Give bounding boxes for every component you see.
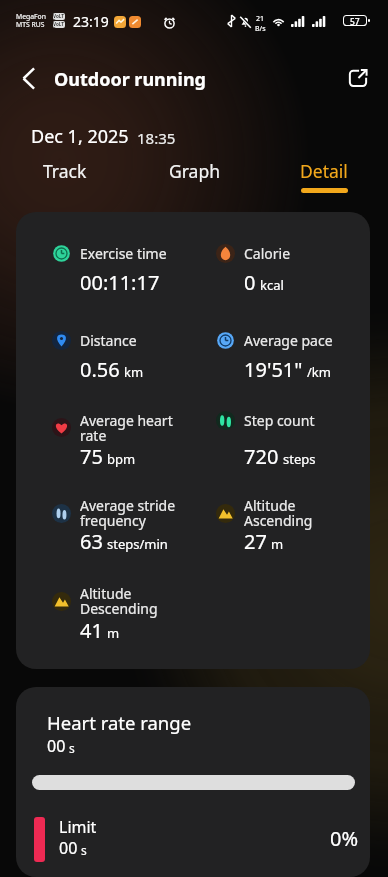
- staticText: Outdoor running: [54, 67, 206, 92]
- staticText: Altitude Descending: [80, 584, 198, 618]
- staticText: Track: [43, 159, 87, 183]
- staticText: 21: [256, 14, 265, 24]
- staticText: Heart rate range: [47, 710, 192, 735]
- staticText: 41: [80, 617, 103, 644]
- staticText: m: [271, 535, 284, 553]
- button[interactable]: Share: [336, 56, 380, 100]
- staticText: Distance: [80, 331, 198, 350]
- staticText: Average pace: [244, 331, 362, 350]
- staticText: MegaFon: [16, 12, 46, 21]
- staticText: MTS RUS: [16, 20, 45, 29]
- staticText: VoLTE: [53, 13, 65, 20]
- staticText: Graph: [169, 159, 221, 183]
- staticText: VoLTE: [53, 21, 65, 28]
- staticText: s: [69, 740, 75, 756]
- staticText: B/s: [255, 24, 266, 34]
- staticText: Average heart rate: [80, 411, 198, 445]
- staticText: 00: [47, 735, 66, 757]
- staticText: 00: [59, 837, 78, 859]
- button[interactable]: Back: [7, 56, 51, 100]
- staticText: km: [124, 363, 144, 381]
- staticText: 18:35: [137, 128, 176, 148]
- staticText: 19'51": [244, 356, 303, 383]
- staticText: 27: [244, 528, 267, 555]
- button[interactable]: Detail: [259, 159, 388, 199]
- staticText: 75: [80, 443, 103, 470]
- staticText: Limit: [59, 816, 97, 838]
- staticText: 720: [244, 443, 279, 470]
- staticText: steps: [283, 450, 316, 468]
- staticText: Exercise time: [80, 244, 198, 263]
- staticText: steps/min: [107, 535, 168, 553]
- staticText: 00:11:17: [80, 269, 160, 296]
- staticText: Calorie: [244, 244, 362, 263]
- staticText: Altitude Ascending: [244, 496, 362, 530]
- button[interactable]: Graph: [130, 159, 259, 199]
- staticText: 0%: [330, 825, 359, 852]
- staticText: 57: [350, 16, 360, 25]
- staticText: 0: [244, 269, 256, 296]
- staticText: kcal: [260, 276, 284, 294]
- staticText: 63: [80, 528, 103, 555]
- staticText: Average stride frequency: [80, 496, 198, 530]
- staticText: Detail: [300, 159, 348, 183]
- staticText: /km: [307, 363, 331, 381]
- staticText: bpm: [107, 450, 136, 468]
- staticText: Step count: [244, 411, 362, 430]
- staticText: Dec 1, 2025: [31, 124, 129, 149]
- staticText: 0.56: [80, 356, 120, 383]
- staticText: s: [81, 842, 87, 858]
- staticText: 23:19: [73, 12, 109, 31]
- staticText: m: [107, 624, 120, 642]
- button[interactable]: Track: [0, 159, 130, 199]
